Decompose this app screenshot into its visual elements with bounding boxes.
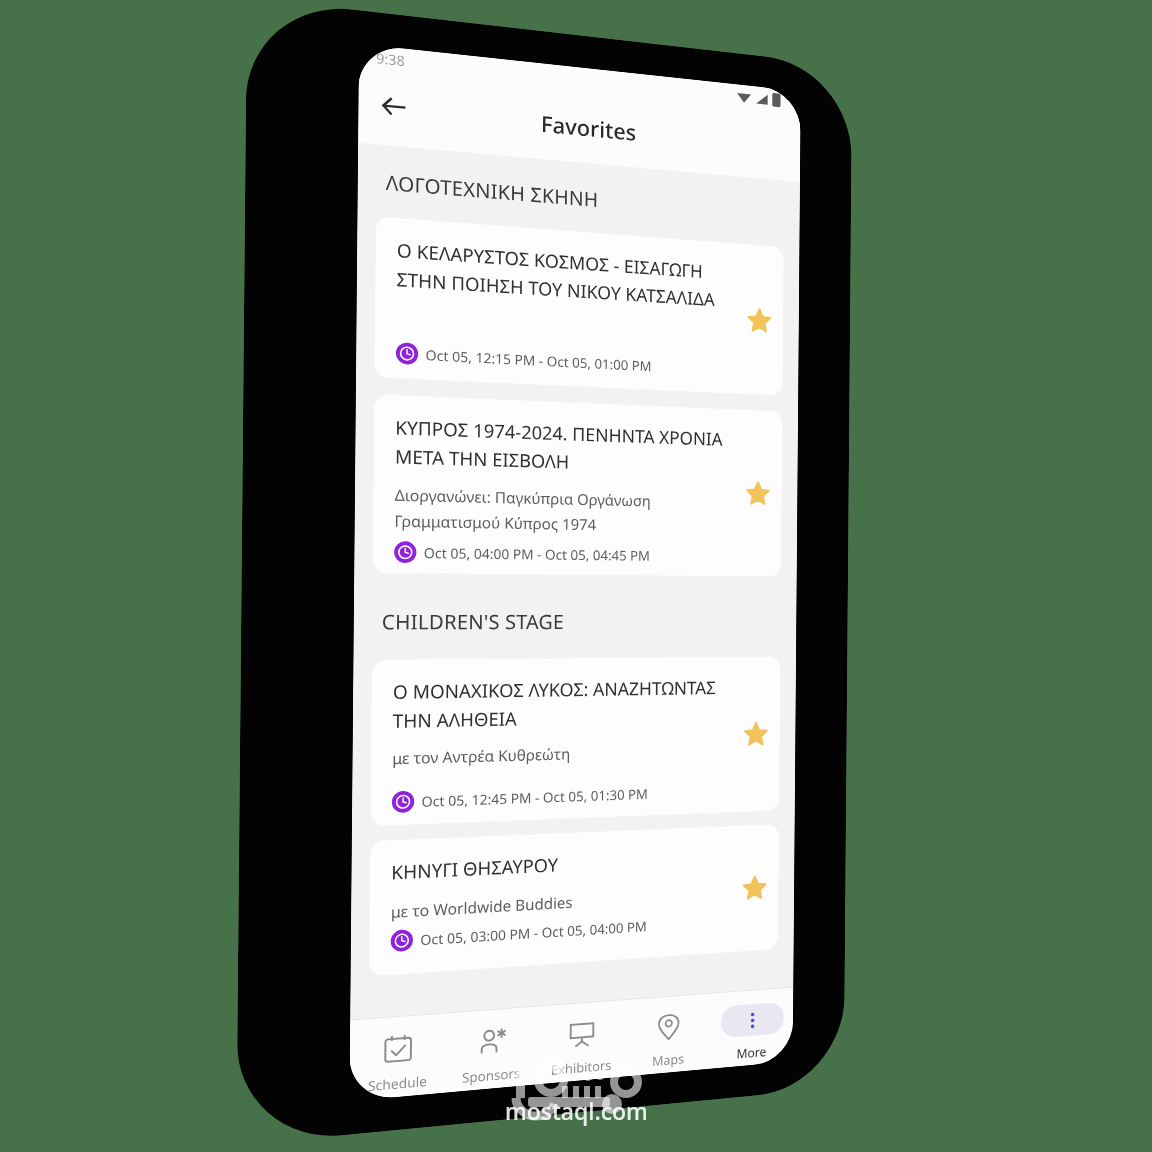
button[interactable]: Ο ΜΟΝΑΧΙΚΟΣ ΛΥΚΟΣ: ΑΝΑΖΗΤΩΝΤΑΣ ΤΗΝ ΑΛΗΘΕ… [370,656,780,826]
button[interactable]: Maps [625,994,711,1076]
staticText: Sponsors [462,1063,521,1087]
staticText: CHILDREN'S STAGE [382,608,565,636]
button[interactable]: More [710,987,793,1069]
staticText: More [736,1042,767,1062]
staticText: mostaql.com [505,1095,648,1126]
button[interactable]: ΚΥΠΡΟΣ 1974-2024. ΠΕΝΗΝΤΑ ΧΡΟΝΙΑ ΜΕΤΑ ΤΗ… [372,394,782,577]
staticText: Oct 05, 03:00 PM - Oct 05, 04:00 PM [420,917,648,949]
staticText: Ο ΜΟΝΑΧΙΚΟΣ ΛΥΚΟΣ: ΑΝΑΖΗΤΩΝΤΑΣ ΤΗΝ ΑΛΗΘΕ… [392,675,728,733]
button[interactable]: Ο ΚΕΛΑΡΥΣΤΟΣ ΚΟΣΜΟΣ - ΕΙΣΑΓΩΓΗ ΣΤΗΝ ΠΟΙΗ… [374,216,784,396]
staticText: Schedule [368,1071,427,1095]
staticText: ΚΗΝΥΓΙ ΘΗΣΑΥΡΟΥ [391,852,559,886]
button[interactable]: Favorite [739,473,776,513]
button[interactable]: Schedule [349,1013,446,1101]
button[interactable]: Exhibitors [537,1000,625,1084]
staticText: Oct 05, 12:15 PM - Oct 05, 01:00 PM [425,346,652,375]
staticText: Διοργανώνει: Παγκύπρια Οργάνωση Γραμματι… [394,484,730,536]
button[interactable]: Sponsors [445,1007,537,1093]
button[interactable]: Favorite [736,867,773,908]
staticText: Exhibitors [551,1056,611,1079]
button[interactable]: Favorite [737,714,774,754]
staticText: Maps [652,1049,685,1070]
staticText: 9:38 [376,49,405,70]
staticText: Oct 05, 12:45 PM - Oct 05, 01:30 PM [421,785,649,811]
staticText: Favorites [541,108,637,147]
button[interactable]: Back [366,77,422,136]
button[interactable]: Favorite [741,300,778,341]
staticText: με τον Αντρέα Κυθρεώτη [392,743,571,768]
staticText: ΚΥΠΡΟΣ 1974-2024. ΠΕΝΗΝΤΑ ΧΡΟΝΙΑ ΜΕΤΑ ΤΗ… [395,415,731,478]
staticText: ΛΟΓΟΤΕΧΝΙΚΗ ΣΚΗΝΗ [386,168,599,213]
staticText: Oct 05, 04:00 PM - Oct 05, 04:45 PM [424,544,651,565]
staticText: Ο ΚΕΛΑΡΥΣΤΟΣ ΚΟΣΜΟΣ - ΕΙΣΑΓΩΓΗ ΣΤΗΝ ΠΟΙΗ… [396,237,732,312]
button[interactable]: ΚΗΝΥΓΙ ΘΗΣΑΥΡΟΥ [369,824,779,976]
staticText: με το Worldwide Buddies [391,892,573,922]
